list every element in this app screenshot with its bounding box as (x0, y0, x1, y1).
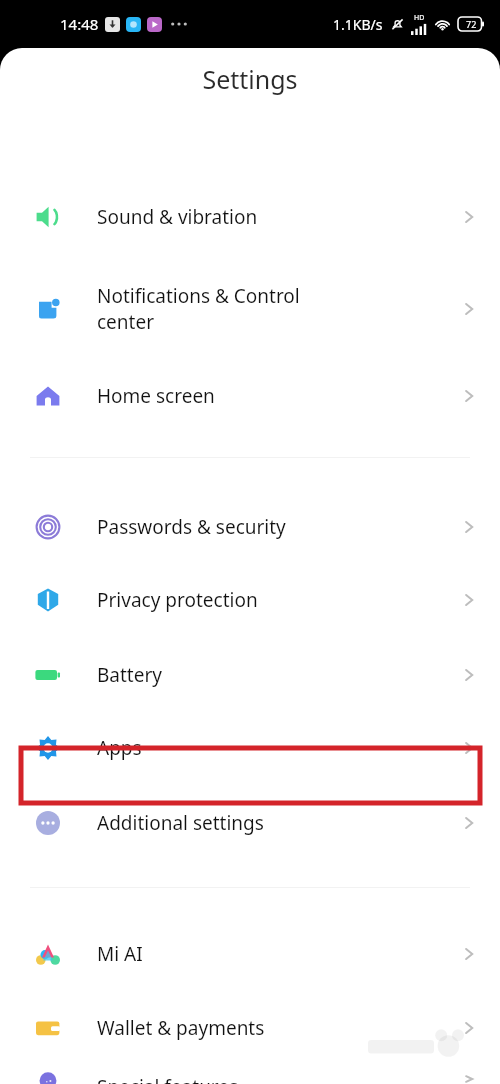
button[interactable]: Privacy protection (0, 572, 500, 628)
staticText: 72 (466, 18, 477, 30)
button[interactable]: Notifications and Control center (0, 270, 500, 348)
button[interactable]: Passwords and security (0, 499, 500, 555)
staticText: Passwords & security (97, 514, 460, 540)
staticText: Wallet & payments (97, 1015, 460, 1041)
other: Additional settings (33, 808, 63, 838)
other: Sound and vibration (33, 202, 63, 232)
button[interactable]: Apps (0, 720, 500, 776)
button[interactable]: Sound and vibration (0, 189, 500, 245)
other: Passwords and security (33, 512, 63, 542)
button[interactable]: Mi AI (0, 926, 500, 982)
button[interactable]: Additional settings (0, 795, 500, 851)
other: Apps (33, 733, 63, 763)
staticText: HD (414, 13, 425, 23)
other: Notifications and Control center (33, 294, 63, 324)
staticText: Privacy protection (97, 587, 460, 613)
staticText: 14:48 (60, 14, 99, 34)
staticText: Settings (202, 62, 298, 96)
other: Mi AI (33, 939, 63, 969)
button[interactable]: Home screen (0, 368, 500, 424)
staticText: Home screen (97, 383, 460, 409)
staticText: Special features (97, 1074, 460, 1084)
button[interactable]: Special features (0, 1074, 500, 1084)
staticText: Mi AI (97, 941, 460, 967)
button[interactable]: Battery (0, 647, 500, 703)
staticText: Additional settings (97, 810, 460, 836)
staticText: 1.1KB/s (333, 15, 383, 34)
other: Privacy protection (33, 585, 63, 615)
other: Wallet and payments (33, 1013, 63, 1043)
staticText: Apps (97, 735, 460, 761)
staticText: Sound & vibration (97, 204, 460, 230)
button[interactable]: Wallet and payments (0, 1000, 500, 1056)
other: Home screen (33, 381, 63, 411)
staticText: Notifications & Control center (97, 283, 460, 335)
staticText: Battery (97, 662, 460, 688)
other: Special features (33, 1074, 63, 1084)
other: Battery (33, 660, 63, 690)
